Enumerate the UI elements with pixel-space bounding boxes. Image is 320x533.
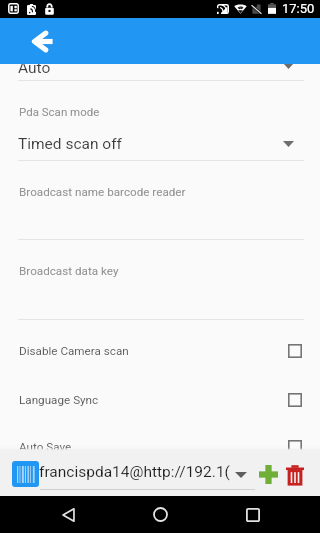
button[interactable]: Disable Camera scan xyxy=(0,326,320,375)
button[interactable]: Home xyxy=(147,496,173,533)
button[interactable]: Add xyxy=(255,461,282,488)
staticText: 17:50 xyxy=(282,1,315,16)
staticText: Pda Scan mode xyxy=(19,105,100,118)
button[interactable]: Auto xyxy=(0,54,320,82)
button[interactable]: Language Sync xyxy=(0,375,320,424)
staticText: Auto xyxy=(18,59,51,77)
staticText: Language Sync xyxy=(19,393,99,407)
button[interactable]: Navigate back xyxy=(25,23,62,60)
button[interactable]: Timed scan off xyxy=(0,130,320,158)
button[interactable]: Barcode scanner xyxy=(12,461,39,487)
button[interactable]: Auto Save xyxy=(0,422,320,471)
staticText: Timed scan off xyxy=(18,135,122,153)
staticText: Broadcast name barcode reader xyxy=(19,185,186,199)
staticText: francispda14@http://192.1( xyxy=(39,463,230,481)
button[interactable]: francispda14@http://192.1( xyxy=(39,458,256,491)
button[interactable]: Delete xyxy=(281,462,308,489)
button[interactable]: Recent apps xyxy=(240,496,266,533)
staticText: Disable Camera scan xyxy=(19,344,129,358)
staticText: Auto Save xyxy=(19,440,72,454)
staticText: Broadcast data key xyxy=(19,264,119,278)
button[interactable]: Broadcast data key xyxy=(0,263,320,315)
button[interactable]: Back xyxy=(53,496,83,533)
button[interactable]: Broadcast name barcode reader xyxy=(0,184,320,236)
